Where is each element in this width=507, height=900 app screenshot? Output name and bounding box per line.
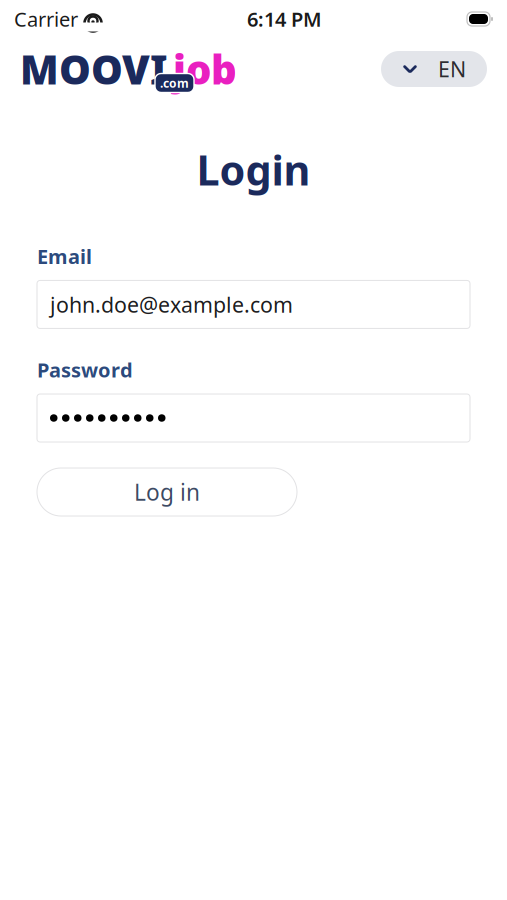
staticText: job <box>173 42 237 95</box>
staticText: Log in <box>134 477 200 507</box>
staticText: Carrier <box>14 6 78 32</box>
staticText: john.doe@example.com <box>50 290 293 319</box>
staticText: Password <box>37 356 133 383</box>
staticText: Login <box>196 142 310 197</box>
staticText: 6:14 PM <box>247 6 322 32</box>
staticText: Email <box>37 243 92 269</box>
button[interactable]: Select language, English <box>381 51 487 87</box>
staticText: .com <box>160 75 189 91</box>
staticText: MOOVI <box>20 42 168 95</box>
staticText: EN <box>438 55 466 83</box>
button[interactable]: Log in <box>37 468 297 516</box>
